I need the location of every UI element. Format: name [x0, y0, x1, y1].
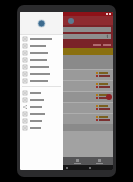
button[interactable]: Search	[92, 157, 106, 165]
button[interactable]	[20, 69, 113, 80]
button[interactable]	[20, 70, 63, 77]
button[interactable]	[20, 42, 63, 49]
button[interactable]	[20, 113, 113, 124]
button[interactable]: Route detail	[106, 94, 112, 100]
button[interactable]	[20, 124, 63, 131]
button[interactable]: Account	[68, 18, 74, 24]
button[interactable]	[20, 102, 113, 113]
button[interactable]	[20, 49, 63, 56]
button[interactable]	[20, 117, 63, 124]
button[interactable]	[20, 56, 63, 63]
button[interactable]	[20, 35, 63, 42]
button[interactable]	[20, 110, 63, 117]
button[interactable]	[20, 80, 113, 91]
button[interactable]	[20, 96, 63, 103]
button[interactable]	[20, 77, 63, 84]
button[interactable]	[22, 34, 111, 39]
button[interactable]	[22, 27, 111, 32]
button[interactable]	[20, 103, 63, 110]
button[interactable]	[20, 63, 63, 70]
button[interactable]: Home	[70, 157, 84, 165]
button[interactable]	[20, 12, 63, 34]
button[interactable]	[20, 48, 113, 55]
button[interactable]	[20, 89, 63, 96]
button[interactable]: Route detail	[20, 91, 113, 102]
